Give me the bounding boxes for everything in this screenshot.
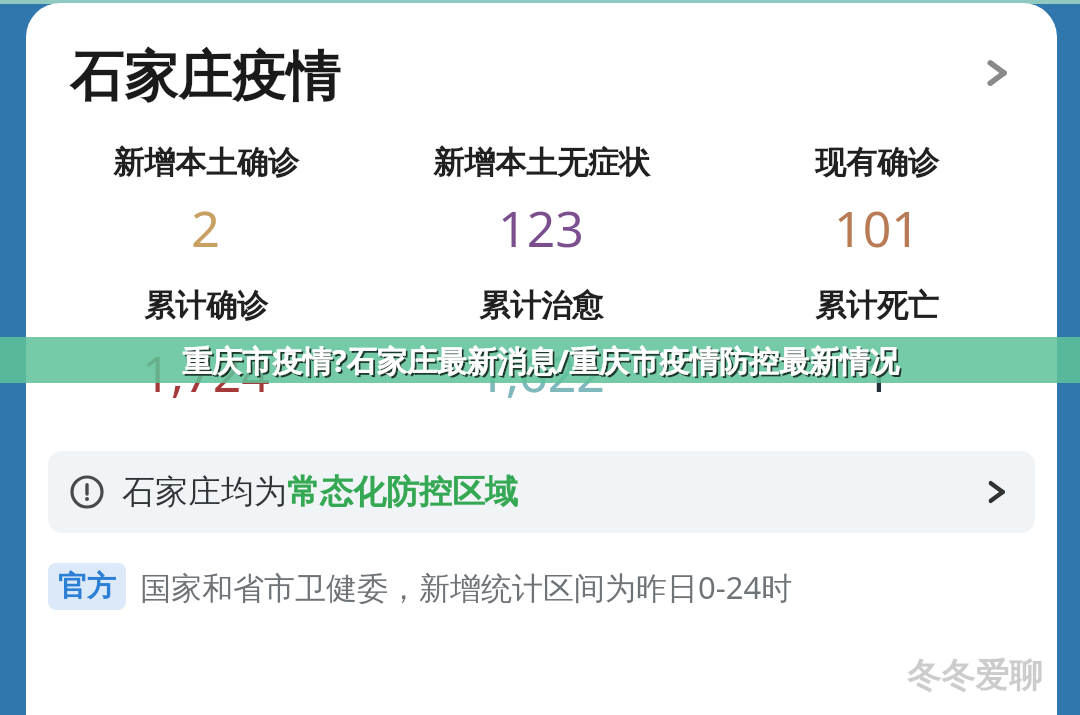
other: More details	[973, 51, 1017, 95]
staticText: 累计治愈	[479, 286, 603, 325]
staticText: 常态化防控区域	[287, 471, 518, 513]
staticText: 123	[498, 194, 584, 262]
button[interactable]: 石家庄疫情	[26, 3, 1057, 143]
staticText: 1,724	[142, 339, 270, 407]
staticText: 国家和省市卫健委，新增统计区间为昨日0-24时	[140, 566, 793, 608]
button[interactable]: 官方	[48, 563, 1035, 610]
staticText: 现有确诊	[815, 143, 939, 182]
staticText: 石家庄均为	[122, 471, 287, 513]
staticText: 重庆市疫情?石家庄最新消息/重庆市疫情防控最新情况	[182, 340, 899, 381]
staticText: 累计死亡	[815, 286, 939, 325]
staticText: 新增本土确诊	[113, 143, 299, 182]
staticText: 新增本土无症状	[433, 143, 650, 182]
staticText: 累计确诊	[144, 286, 268, 325]
staticText: 官方	[58, 568, 116, 605]
staticText: 重庆市疫情?石家庄最新消息/重庆市疫情防控最新情况	[184, 342, 901, 383]
staticText: 石家庄疫情	[70, 43, 340, 111]
staticText: 2	[191, 194, 220, 262]
staticText: 1	[863, 339, 892, 407]
button[interactable]: 石家庄均为	[48, 451, 1035, 533]
staticText: 冬冬爱聊	[907, 654, 1043, 697]
staticText: 1,622	[477, 339, 605, 407]
staticText: 101	[834, 194, 920, 262]
